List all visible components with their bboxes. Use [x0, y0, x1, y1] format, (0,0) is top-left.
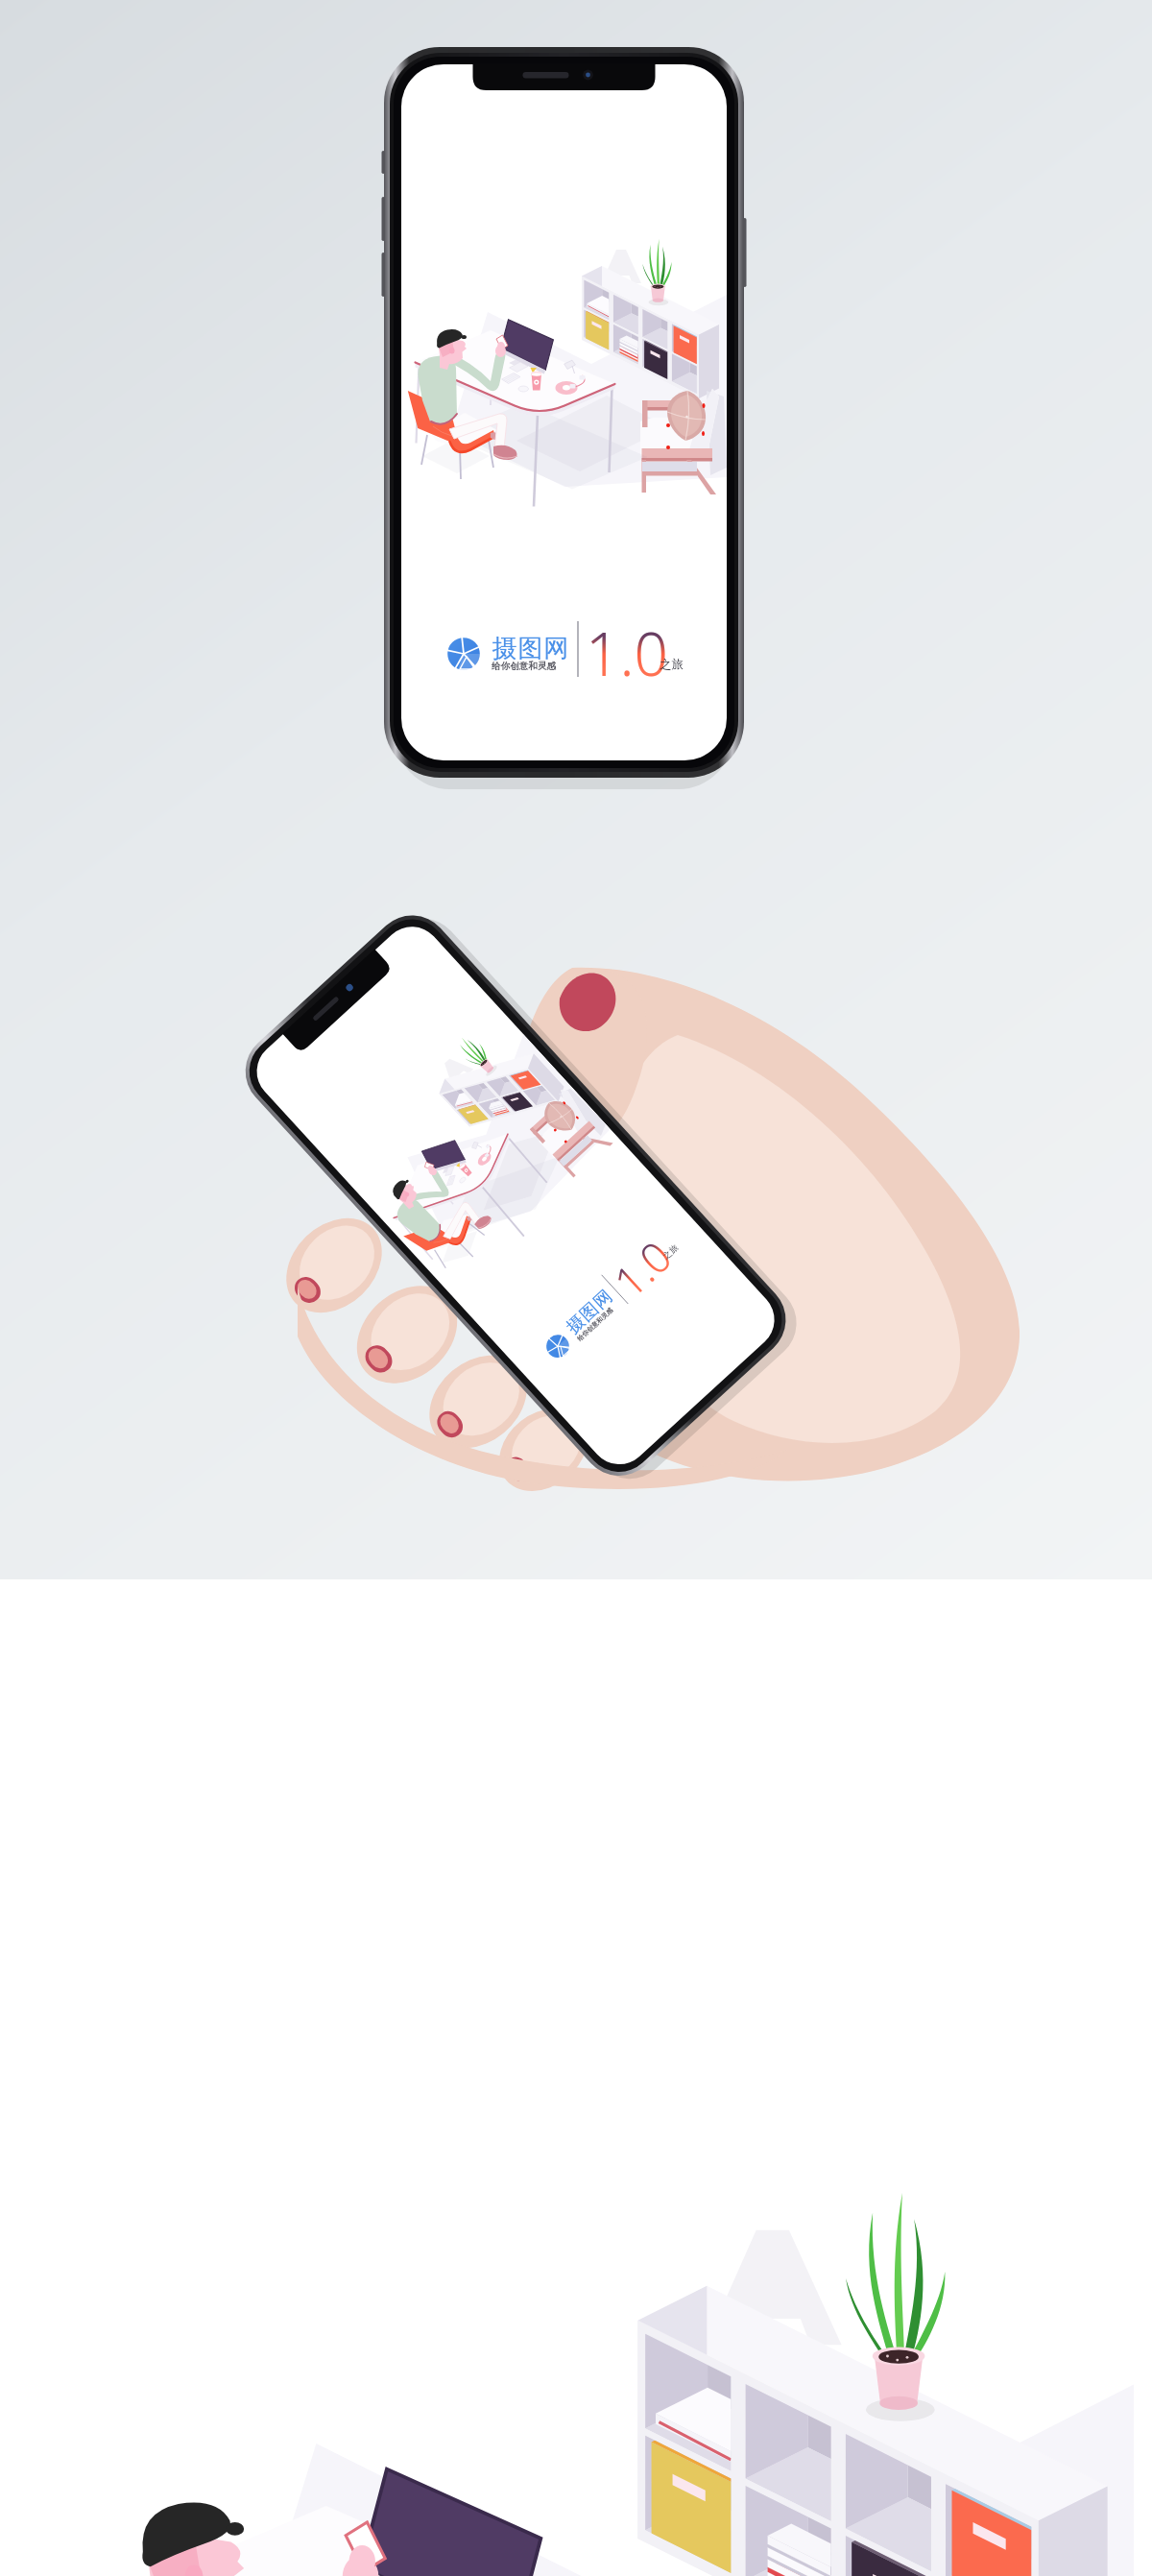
staticText: 之旅	[660, 657, 684, 672]
staticText: 1.0	[601, 1227, 683, 1309]
staticText: 摄图网	[562, 1284, 617, 1338]
button[interactable]: App splash screen preview	[384, 47, 744, 778]
staticText: 摄图网	[492, 633, 569, 664]
staticText: 1.0	[586, 613, 668, 693]
staticText: 给你创意和灵感	[575, 1305, 615, 1343]
staticText: 给你创意和灵感	[492, 661, 557, 672]
staticText: 之旅	[661, 1242, 681, 1262]
